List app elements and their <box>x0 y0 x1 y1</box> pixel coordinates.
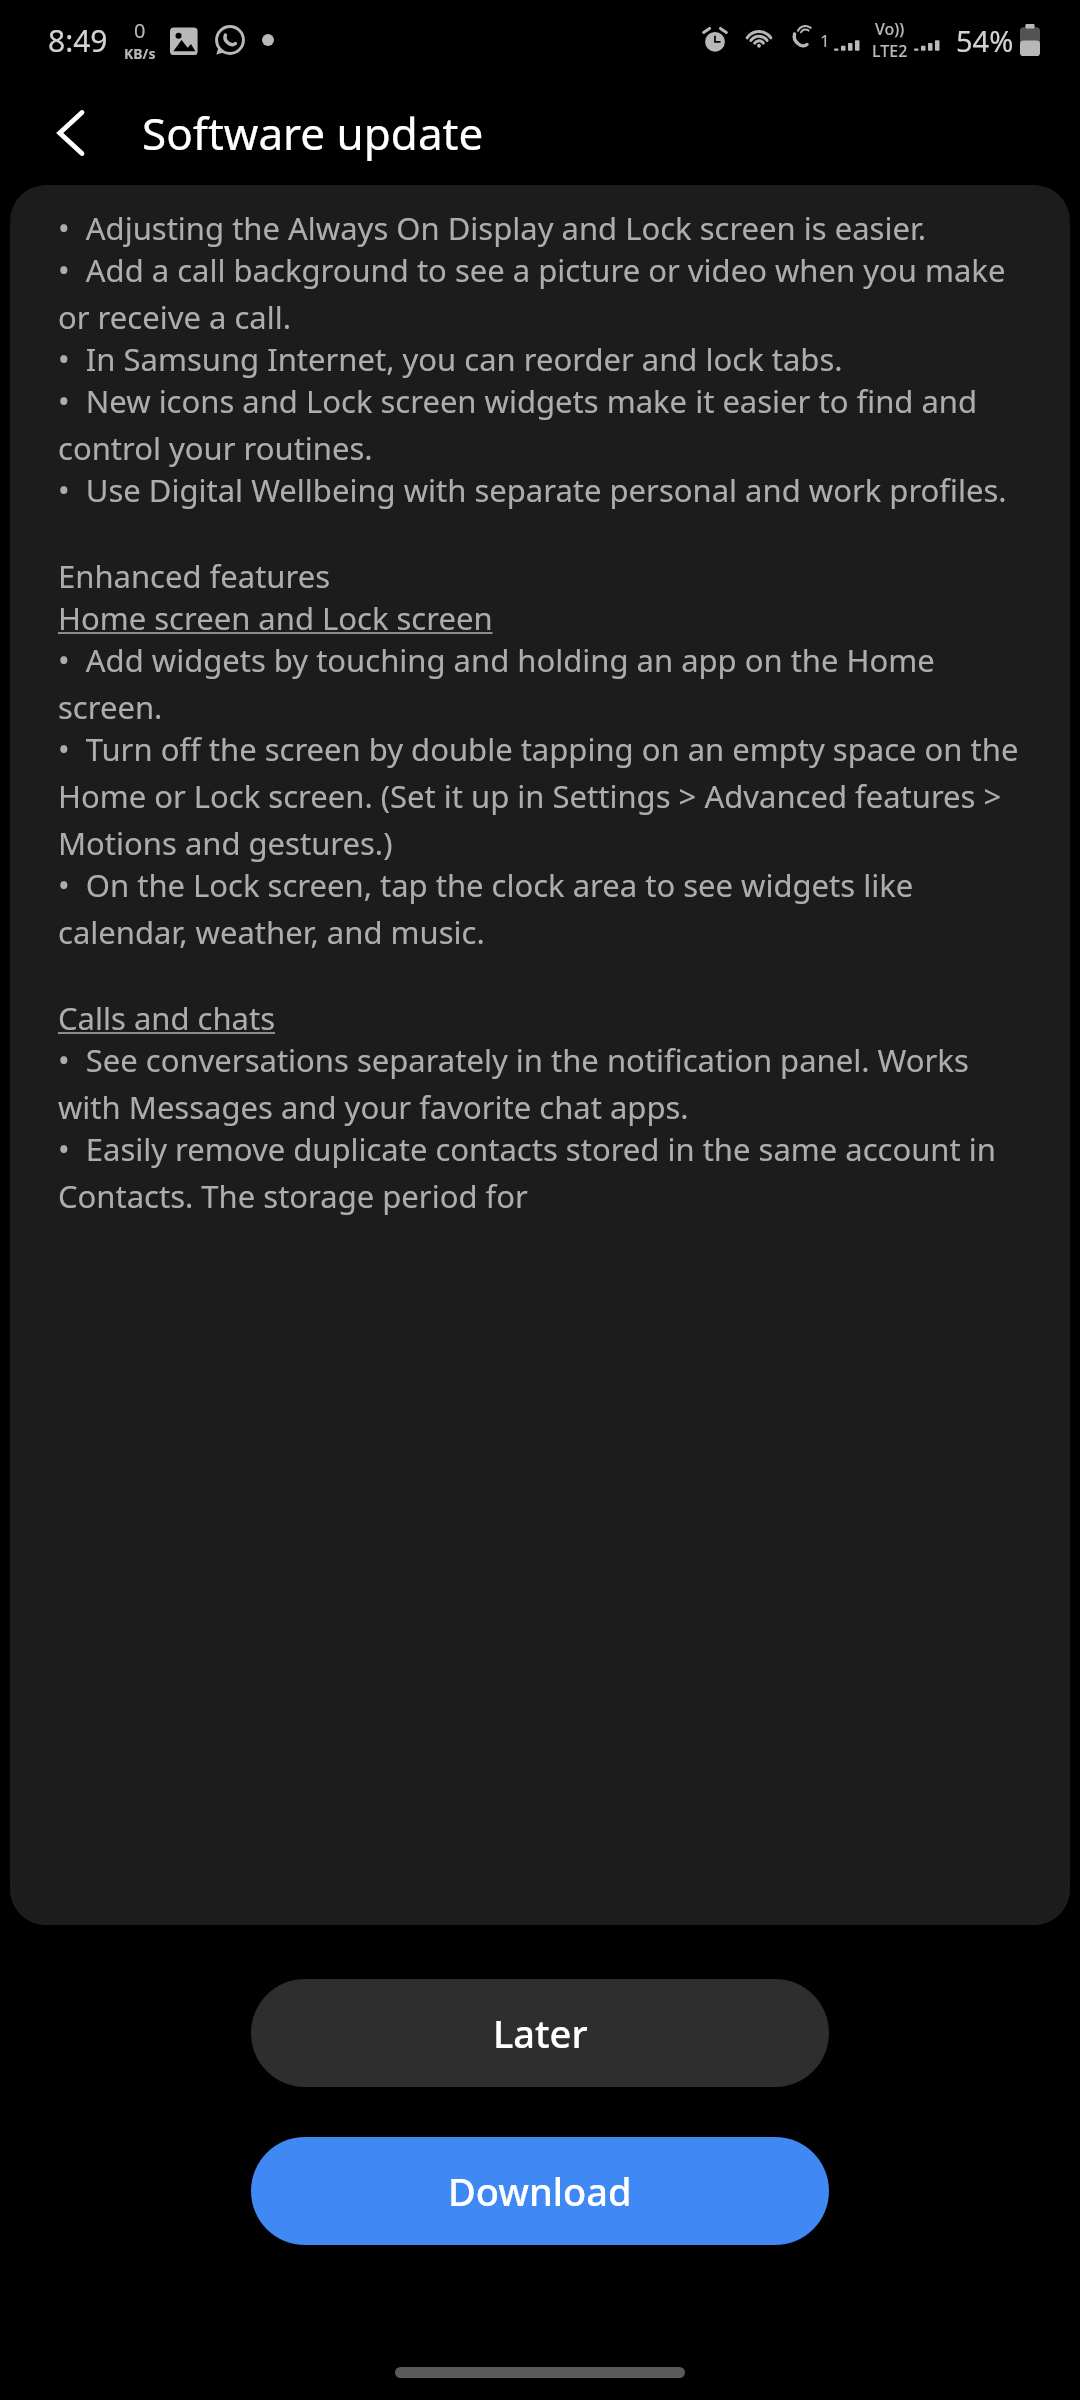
staticText: • New icons and Lock screen widgets make… <box>58 380 1032 469</box>
staticText: Download <box>448 2165 632 2217</box>
staticText: Software update <box>142 103 484 163</box>
staticText: • Add widgets by touching and holding an… <box>58 639 1032 728</box>
staticText: 0 <box>134 17 146 44</box>
staticText: KB/s <box>124 44 156 63</box>
staticText: Later <box>493 2007 588 2059</box>
staticText: 8:49 <box>48 20 108 61</box>
button[interactable]: Download <box>251 2137 829 2245</box>
staticText: 1 <box>820 29 830 52</box>
staticText: LTE2 <box>872 40 908 62</box>
button[interactable]: Back <box>30 93 110 173</box>
staticText: • On the Lock screen, tap the clock area… <box>58 864 1032 953</box>
staticText: • Add a call background to see a picture… <box>58 249 1032 338</box>
staticText: • Use Digital Wellbeing with separate pe… <box>58 469 1007 511</box>
staticText: Vo)) <box>875 18 905 40</box>
staticText: • Adjusting the Always On Display and Lo… <box>58 207 927 249</box>
staticText: • Turn off the screen by double tapping … <box>58 728 1032 864</box>
button[interactable]: Later <box>251 1979 829 2087</box>
staticText: • See conversations separately in the no… <box>58 1039 1032 1128</box>
staticText: • In Samsung Internet, you can reorder a… <box>58 338 843 380</box>
staticText: Home screen and Lock screen <box>58 597 493 639</box>
staticText: Enhanced features <box>58 555 330 597</box>
staticText: 54% <box>956 21 1014 60</box>
staticText: • Easily remove duplicate contacts store… <box>58 1128 1032 1217</box>
staticText: Calls and chats <box>58 997 276 1039</box>
